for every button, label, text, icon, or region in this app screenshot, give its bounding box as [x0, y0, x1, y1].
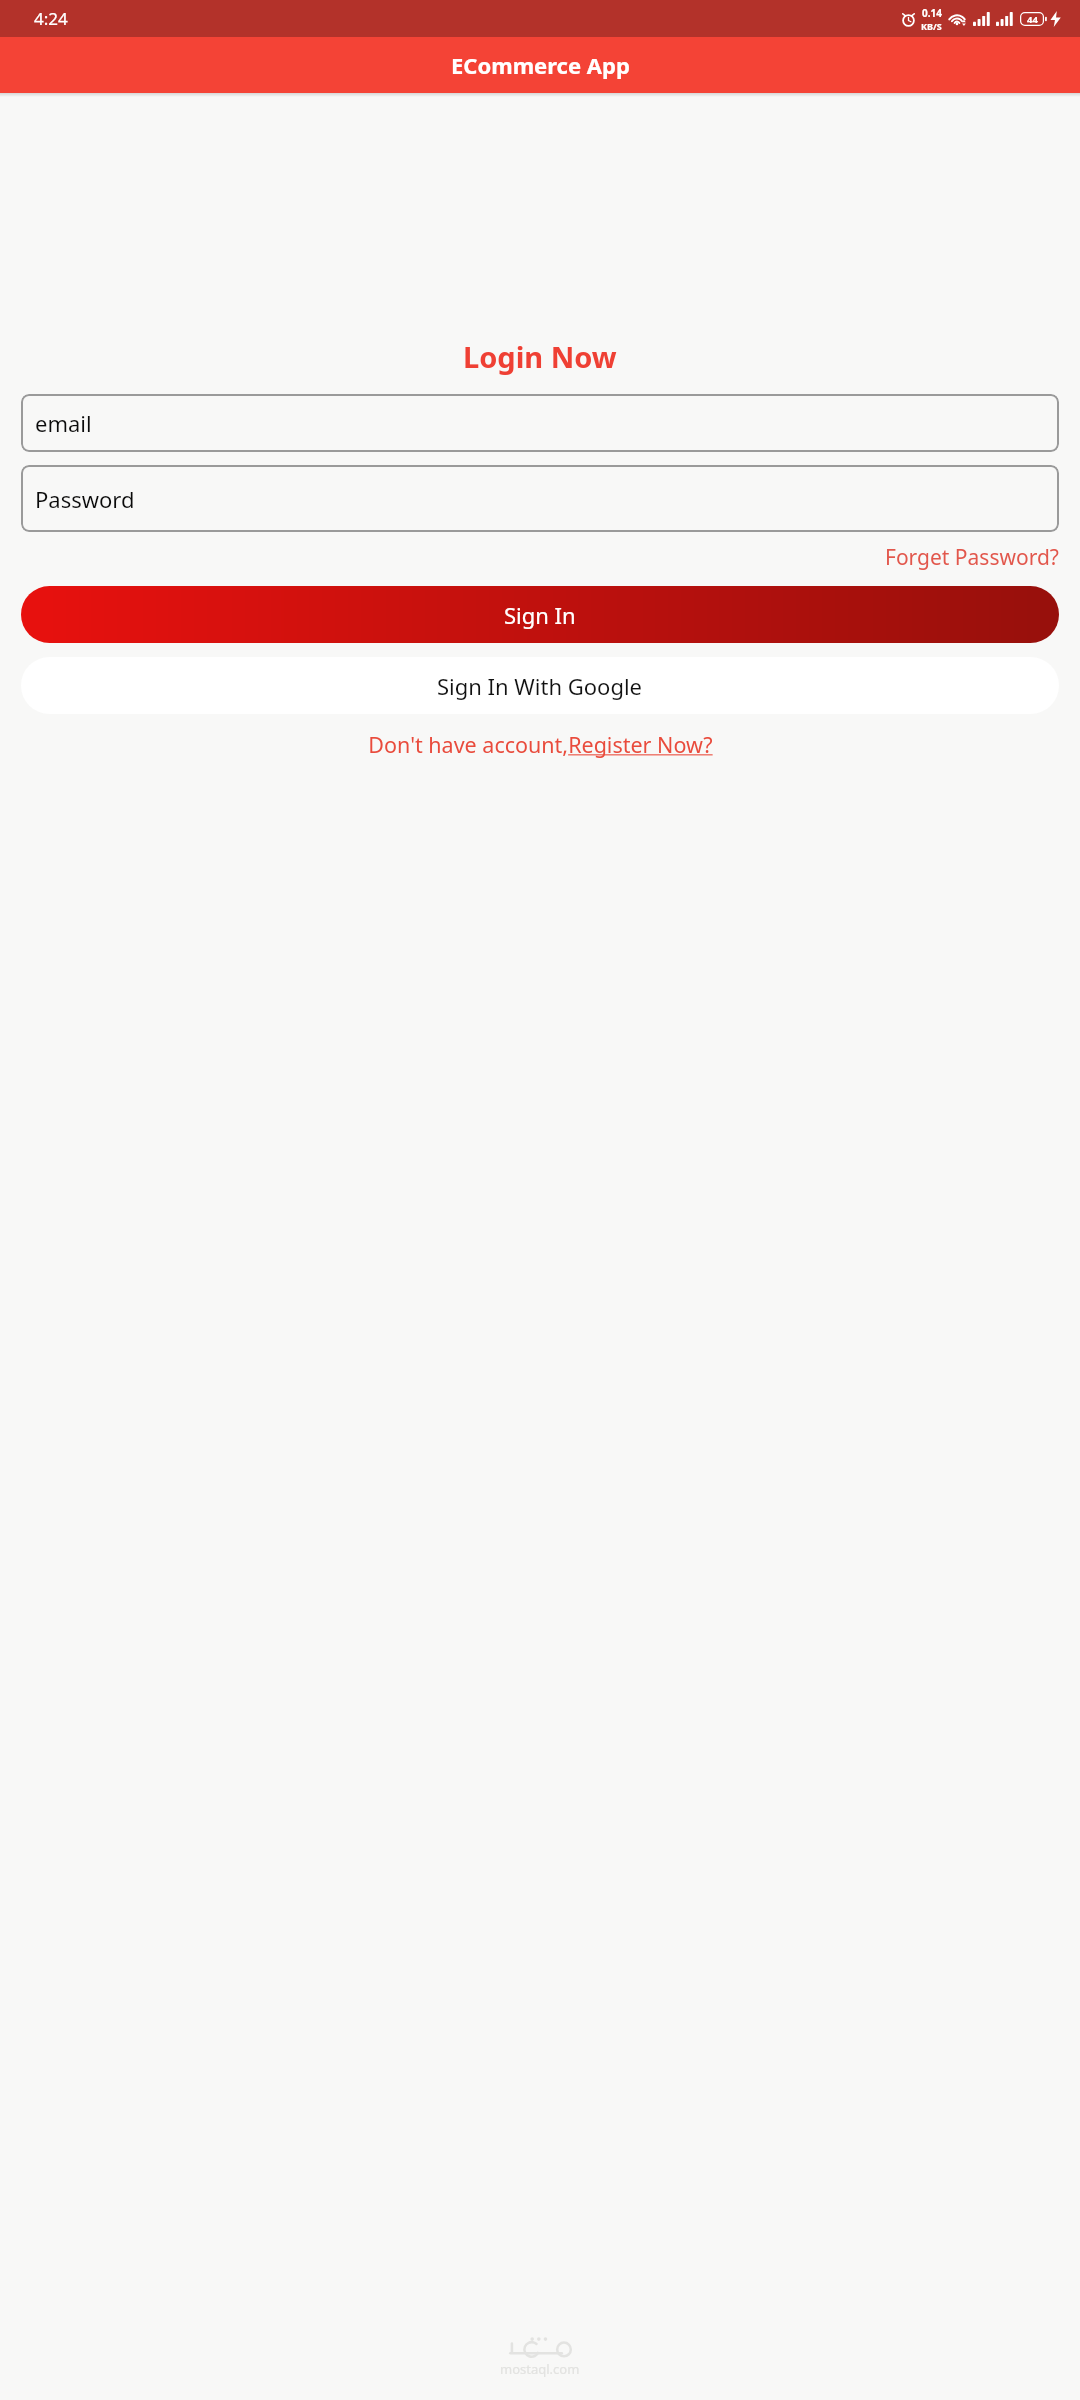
- staticText: KB/S: [921, 20, 942, 32]
- staticText: 4:24: [34, 7, 68, 30]
- staticText: Sign In With Google: [437, 671, 643, 701]
- staticText: 0.14: [922, 6, 942, 20]
- button[interactable]: Sign In: [21, 586, 1059, 643]
- staticText: mostaql.com: [500, 2360, 580, 2378]
- button[interactable]: email: [21, 394, 1059, 452]
- button[interactable]: Sign In With Google: [21, 657, 1059, 714]
- staticText: Sign In: [504, 600, 576, 630]
- button[interactable]: Password: [21, 465, 1059, 532]
- staticText: Don't have account,Register Now?: [368, 730, 713, 759]
- button[interactable]: Don't have account,Register Now?: [21, 730, 1059, 759]
- staticText: Forget Password?: [885, 543, 1059, 572]
- staticText: Password: [35, 484, 135, 514]
- button[interactable]: Forget Password?: [21, 543, 1059, 572]
- staticText: Login Now: [463, 337, 617, 376]
- staticText: ECommerce App: [451, 50, 630, 80]
- staticText: 44: [1027, 13, 1038, 26]
- staticText: email: [35, 408, 92, 438]
